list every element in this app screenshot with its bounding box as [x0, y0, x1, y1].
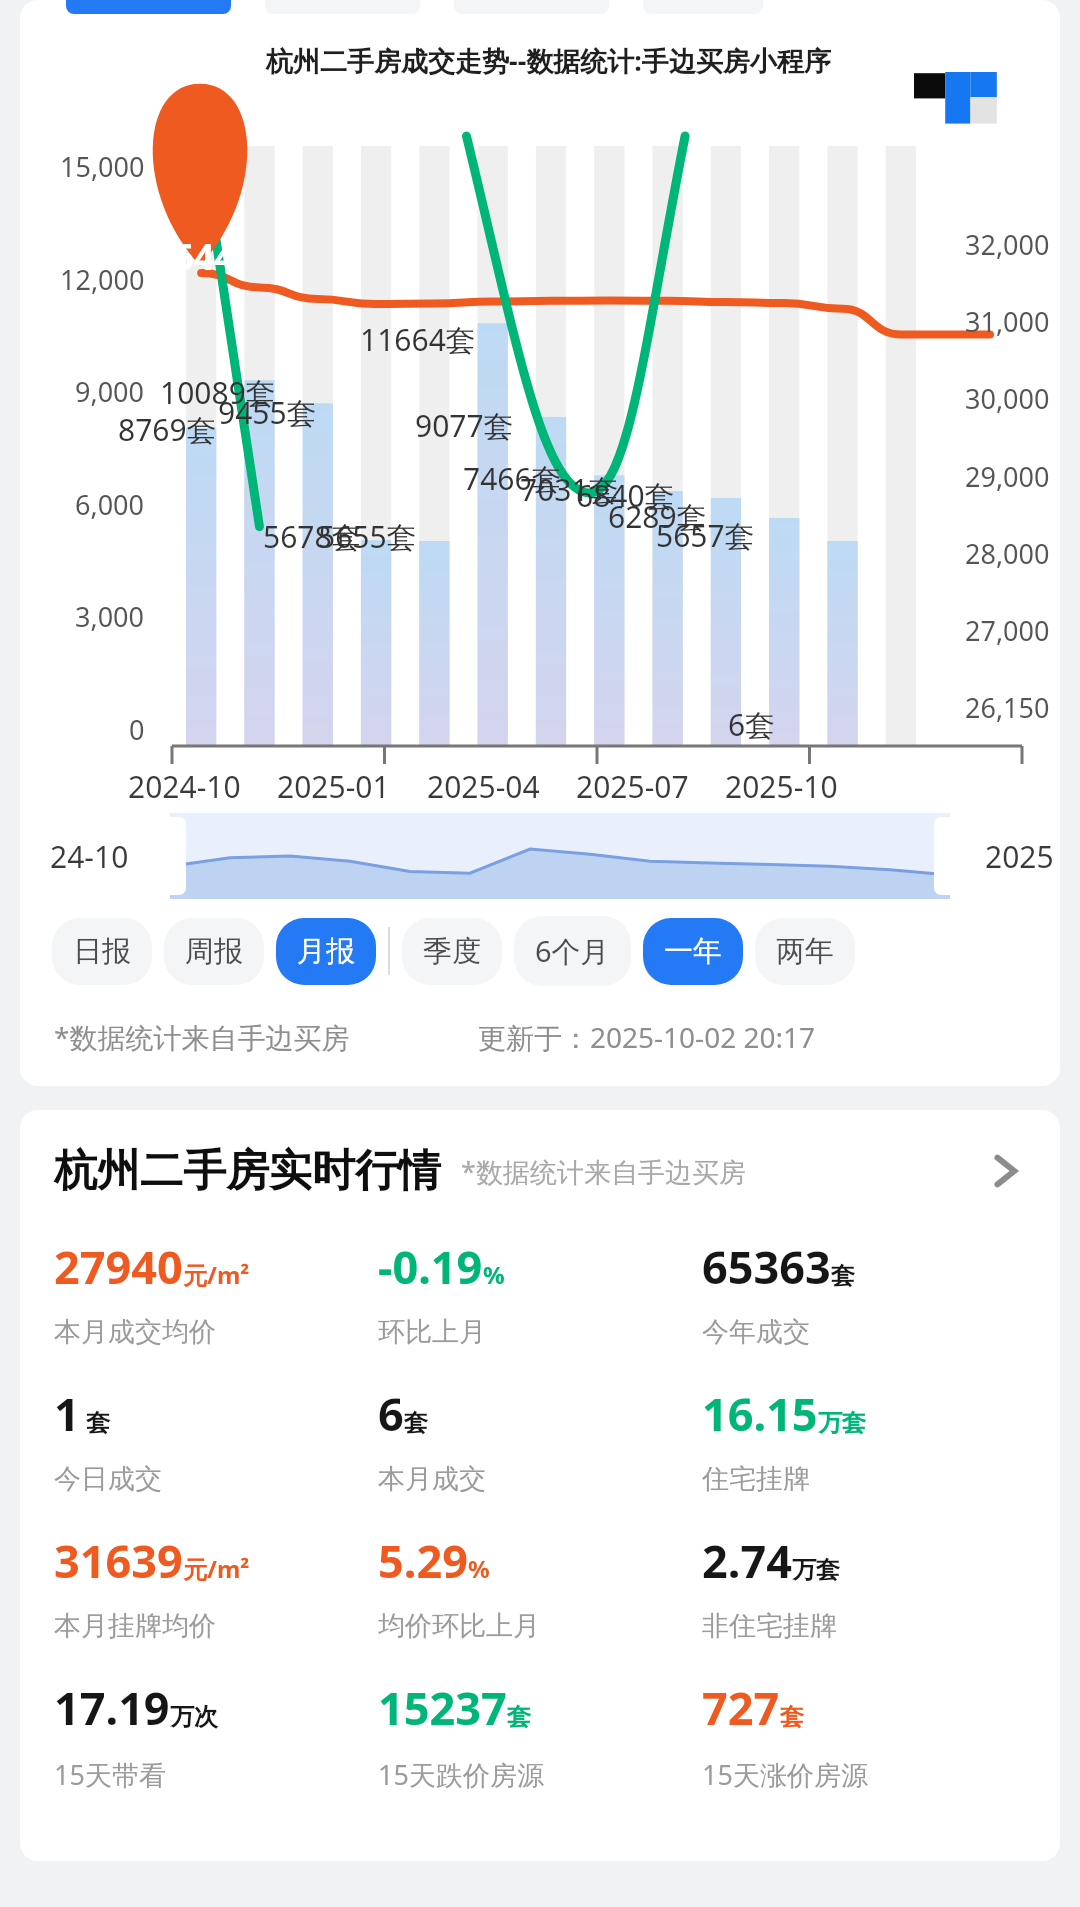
staticText: 32644 — [132, 232, 235, 281]
staticText: 5.29 — [378, 1530, 468, 1591]
button[interactable]: 6 — [378, 1383, 702, 1530]
button[interactable]: 一年 — [643, 918, 743, 985]
staticText: 更新于：2025-10-02 20:17 — [478, 1018, 816, 1056]
staticText: 16.15 — [702, 1383, 818, 1444]
staticText: % — [468, 1552, 490, 1585]
button[interactable]: 2.74 — [702, 1530, 1026, 1677]
staticText: 套 — [507, 1702, 531, 1732]
staticText: 29,000 — [965, 458, 1050, 495]
button[interactable]: 17.19 — [54, 1677, 378, 1827]
staticText: 万套 — [818, 1408, 866, 1438]
staticText: 5657套 — [656, 515, 755, 556]
staticText: 万套 — [792, 1555, 840, 1585]
staticText: 万次 — [170, 1702, 218, 1732]
staticText: 11664套 — [360, 319, 476, 360]
staticText: 本月挂牌均价 — [54, 1609, 216, 1643]
staticText: 15237 — [378, 1677, 507, 1738]
staticText: 24-10 — [50, 836, 129, 877]
staticText: 套 — [831, 1261, 855, 1291]
staticText: 6套 — [728, 704, 776, 745]
staticText: 15天涨价房源 — [702, 1756, 868, 1793]
staticText: % — [483, 1258, 505, 1291]
staticText: 月报 — [297, 933, 355, 970]
staticText: 31639 — [54, 1530, 183, 1591]
staticText: 元/m² — [183, 1258, 250, 1291]
staticText: 15天带看 — [54, 1756, 166, 1793]
button[interactable]: 5.29 — [378, 1530, 702, 1677]
staticText: 今年成交 — [702, 1315, 810, 1349]
staticText: *数据统计来自手边买房 — [461, 1153, 746, 1190]
staticText: 2025-07 — [576, 766, 689, 807]
staticText: 6289套 — [608, 496, 707, 537]
button[interactable]: 27940 — [54, 1236, 378, 1383]
staticText: 27940 — [54, 1236, 183, 1297]
staticText: 套 — [80, 1405, 111, 1438]
staticText: 杭州二手房成交走势--数据统计:手边买房小程序 — [266, 42, 831, 79]
staticText: 9,000 — [75, 373, 145, 410]
button[interactable]: 周报 — [164, 918, 264, 985]
other: 查看更多 — [984, 1150, 1026, 1192]
staticText: 本月成交 — [378, 1462, 486, 1496]
button[interactable]: 6个月 — [514, 916, 631, 986]
button[interactable]: 65363 — [702, 1236, 1026, 1383]
staticText: 非住宅挂牌 — [702, 1609, 837, 1643]
staticText: 10089套 — [160, 372, 276, 413]
staticText: 两年 — [776, 933, 834, 970]
staticText: 套 — [404, 1408, 428, 1438]
staticText: 31,000 — [965, 303, 1050, 340]
staticText: 9455套 — [218, 392, 317, 433]
staticText: 2025-01 — [277, 766, 390, 807]
staticText: 5655套 — [318, 516, 417, 557]
staticText: 26,150 — [965, 689, 1050, 726]
staticText: 8769套 — [118, 409, 217, 450]
staticText: 2024-10 — [128, 766, 241, 807]
button[interactable] — [934, 817, 958, 895]
staticText: 元/m² — [183, 1552, 250, 1585]
staticText: 2.74 — [702, 1530, 792, 1591]
staticText: 6个月 — [535, 931, 610, 971]
staticText: 3,000 — [75, 598, 145, 635]
staticText: 6840套 — [576, 475, 675, 516]
staticText: 6 — [378, 1383, 404, 1444]
staticText: 5678套 — [263, 516, 362, 557]
staticText: 周报 — [185, 933, 243, 970]
staticText: 15,000 — [60, 148, 145, 185]
button[interactable]: 日报 — [52, 918, 152, 985]
staticText: *数据统计来自手边买房 — [54, 1018, 350, 1056]
staticText: 9077套 — [415, 405, 514, 446]
staticText: 住宅挂牌 — [702, 1462, 810, 1496]
staticText: 7031套 — [520, 469, 619, 510]
staticText: 30,000 — [965, 380, 1050, 417]
staticText: 环比上月 — [378, 1315, 486, 1349]
staticText: 本月成交均价 — [54, 1315, 216, 1349]
staticText: -0.19 — [378, 1236, 483, 1297]
button[interactable]: 杭州二手房实时行情 — [20, 1144, 1060, 1198]
button[interactable]: 月报 — [276, 918, 376, 985]
button[interactable]: 两年 — [755, 918, 855, 985]
staticText: 2025 — [985, 836, 1054, 877]
button[interactable] — [162, 817, 186, 895]
staticText: 2025-04 — [427, 766, 540, 807]
staticText: 0 — [129, 711, 145, 748]
staticText: 套 — [780, 1702, 804, 1732]
button[interactable]: 1 — [54, 1383, 378, 1530]
button[interactable]: -0.19 — [378, 1236, 702, 1383]
staticText: 32,000 — [965, 226, 1050, 263]
staticText: 杭州二手房实时行情 — [54, 1144, 441, 1198]
staticText: 7466套 — [463, 458, 562, 499]
staticText: 27,000 — [965, 612, 1050, 649]
button[interactable]: 31639 — [54, 1530, 378, 1677]
button[interactable]: 15237 — [378, 1677, 702, 1827]
staticText: 15天跌价房源 — [378, 1756, 544, 1793]
staticText: 28,000 — [965, 535, 1050, 572]
staticText: 727 — [702, 1677, 780, 1738]
staticText: 17.19 — [54, 1677, 170, 1738]
staticText: 一年 — [664, 933, 722, 970]
button[interactable]: 16.15 — [702, 1383, 1026, 1530]
staticText: 6,000 — [75, 486, 145, 523]
button[interactable]: 727 — [702, 1677, 1026, 1827]
staticText: 2025-10 — [725, 766, 838, 807]
staticText: 均价环比上月 — [378, 1609, 540, 1643]
staticText: 12,000 — [60, 261, 145, 298]
button[interactable]: 季度 — [402, 918, 502, 985]
